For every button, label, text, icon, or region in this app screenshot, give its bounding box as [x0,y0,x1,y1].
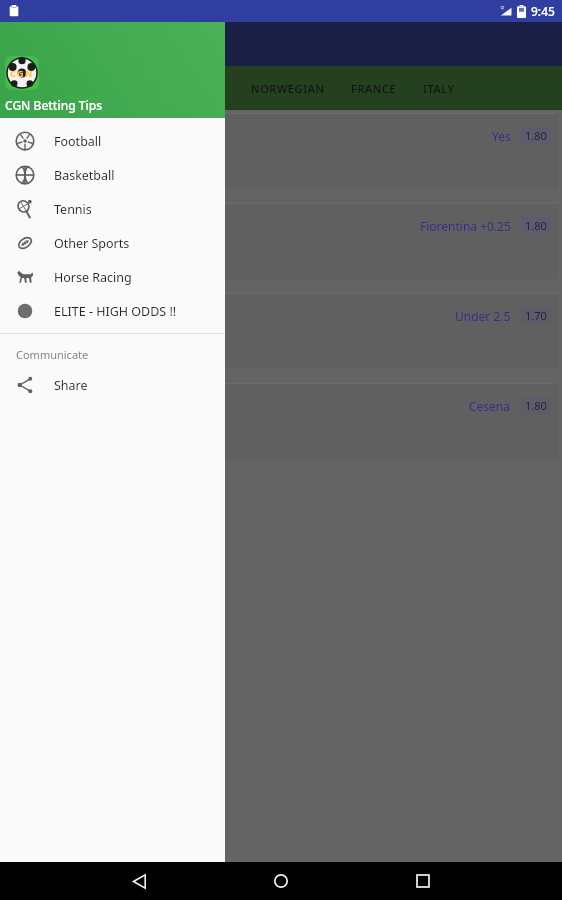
staticText: 1.70 [525,308,547,323]
staticText: 9:45 [531,3,555,19]
staticText: Tennis [54,201,92,218]
staticText: 1.80 [525,128,547,143]
button[interactable]: Fiorentina +0.25 [4,203,558,279]
staticText: Fiorentina +0.25 [420,218,511,234]
staticText: ND [0,81,13,96]
button[interactable]: Tennis [0,192,225,226]
button[interactable]: Yes [4,113,558,189]
button[interactable]: bile Strike [0,832,170,888]
staticText: Under 2.5 [455,308,511,324]
staticText: mpete with friends. Play [2,859,99,871]
button[interactable]: FRANCE [338,66,410,110]
staticText: ITALY [423,81,455,96]
button[interactable]: 1.80 [525,128,547,143]
button[interactable]: SPAIN [26,66,87,110]
button[interactable]: Install [102,849,157,873]
staticText: NORWEGIAN [251,81,325,96]
staticText: Cesena [469,398,511,414]
button[interactable]: Horse Racing [0,260,225,294]
button[interactable]: Cesena [4,383,558,459]
staticText: ELITE - HIGH ODDS !! [54,303,177,320]
staticText: Horse Racing [54,269,132,286]
staticText: Other Sports [54,235,130,252]
button[interactable]: Football [0,124,225,158]
button[interactable]: 1.80 [525,218,547,233]
button[interactable]: 1.80 [525,398,547,413]
button[interactable]: NORWEGIAN [238,66,338,110]
button[interactable]: ELITE - HIGH ODDS !! [0,294,225,328]
button[interactable]: ITALY [410,66,468,110]
button[interactable]: Share [0,368,225,402]
button[interactable]: Basketball [0,158,225,192]
staticText: Basketball [54,167,115,184]
button[interactable]: 1.70 [525,308,547,323]
button[interactable]: Home [263,863,299,899]
staticText: Share [54,377,88,394]
staticText: G [17,67,24,79]
staticText: 1.80 [525,218,547,233]
button[interactable]: DUTCH [171,66,238,110]
staticText: N [25,67,33,79]
staticText: Communicate [16,347,89,362]
staticText: Install [115,854,144,868]
staticText: Football [54,133,102,150]
button[interactable]: GERMANY [87,66,171,110]
staticText: FRANCE [351,81,397,96]
button[interactable]: Under 2.5 [4,293,558,369]
staticText: CGN Betting Tips [5,97,103,113]
staticText: C [10,67,16,79]
button[interactable]: ND [0,66,26,110]
staticText: Yes [492,128,511,144]
button[interactable]: Back [121,863,157,899]
button[interactable]: Recent apps [405,863,441,899]
button[interactable]: Other Sports [0,226,225,260]
staticText: 1.80 [525,398,547,413]
button[interactable]: App icon [5,56,39,90]
